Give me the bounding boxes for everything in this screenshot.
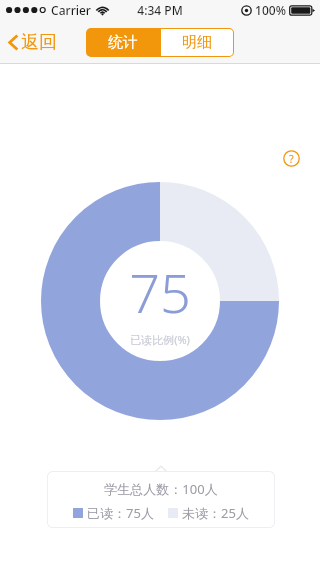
button[interactable]: Help	[279, 146, 303, 170]
staticText: 学生总人数：100人	[104, 480, 218, 498]
staticText: ?	[289, 151, 294, 166]
staticText: 未读：25人	[182, 504, 249, 522]
staticText: 统计	[108, 33, 138, 52]
staticText: 75	[129, 255, 191, 329]
button[interactable]: 明细	[161, 29, 233, 56]
staticText: 已读：75人	[87, 504, 154, 522]
staticText: 4:34 PM	[137, 2, 183, 18]
button[interactable]: 返回	[4, 26, 61, 59]
staticText: 100%	[255, 2, 286, 18]
staticText: 返回	[21, 31, 57, 54]
staticText: 已读比例(%)	[130, 332, 190, 347]
staticText: 明细	[182, 33, 212, 52]
button[interactable]: 统计	[86, 28, 160, 57]
staticText: Carrier	[51, 2, 91, 18]
